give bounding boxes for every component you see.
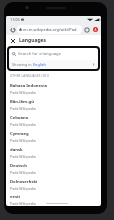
staticText: 11:06	[10, 17, 20, 22]
button[interactable]: Bân-lâm-gú	[6, 97, 101, 113]
button[interactable]: Close	[8, 36, 17, 45]
staticText: Pada Wikipedia	[10, 138, 36, 143]
button[interactable]: More options	[91, 25, 100, 34]
staticText: Languages	[19, 37, 47, 44]
button[interactable]: eesti	[6, 193, 101, 206]
staticText: eesti	[10, 194, 21, 200]
staticText: Deutsch	[10, 163, 28, 169]
button[interactable]: Showing in	[12, 60, 95, 69]
button[interactable]: dansk	[6, 145, 101, 161]
staticText: Cymraeg	[10, 131, 29, 137]
button[interactable]: en.m.wikipedia.org/wiki/Pad	[19, 25, 80, 34]
staticText: Pada Wikipedia	[10, 154, 36, 159]
staticText: Dolnoserbski	[10, 179, 38, 185]
staticText: English	[33, 62, 46, 67]
staticText: Cebuano	[10, 115, 29, 121]
button[interactable]: Cymraeg	[6, 129, 101, 145]
button[interactable]: Search for a language	[12, 48, 95, 60]
staticText: Pada Wikipedia	[10, 201, 36, 206]
staticText: Bahasa Indonesia	[10, 83, 47, 89]
button[interactable]: Bahasa Indonesia	[6, 81, 101, 97]
button[interactable]: Dolnoserbski	[6, 177, 101, 193]
staticText: dansk	[10, 147, 23, 153]
button[interactable]: Cebuano	[6, 113, 101, 129]
staticText: OTHER LANGUAGES (351)	[10, 74, 50, 78]
staticText: Pada Wikipedia	[10, 186, 36, 191]
button[interactable]: Tabs	[82, 25, 91, 34]
staticText: Pada Wikipedia	[10, 106, 36, 111]
button[interactable]: Reload	[8, 25, 17, 34]
staticText: Pada Wikipedia	[10, 122, 36, 127]
staticText: en.m.wikipedia.org/wiki/Pad	[23, 27, 77, 32]
staticText: Search for a language	[18, 51, 62, 57]
staticText: Pada Wikipedia	[10, 90, 36, 95]
staticText: Showing in	[12, 62, 33, 67]
staticText: Bân-lâm-gú	[10, 99, 34, 105]
button[interactable]: Deutsch	[6, 161, 101, 177]
staticText: Pada Wikipedia	[10, 170, 36, 175]
